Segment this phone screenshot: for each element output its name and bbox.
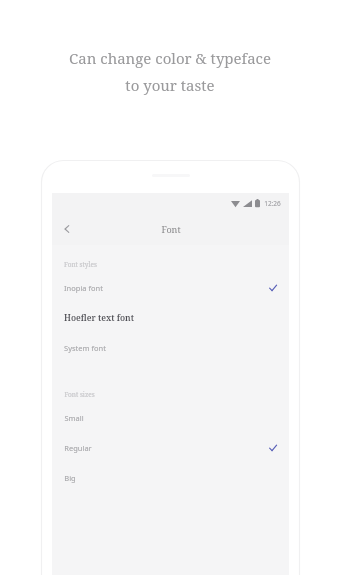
staticText: Can change color & typeface bbox=[69, 48, 271, 68]
staticText: Big bbox=[64, 473, 76, 483]
button[interactable]: Hoefler text font bbox=[52, 303, 289, 333]
staticText: Font styles bbox=[64, 260, 97, 269]
button[interactable]: Small bbox=[52, 403, 289, 433]
button[interactable]: Big bbox=[52, 463, 289, 493]
staticText: Small bbox=[64, 413, 84, 423]
staticText: 12:26 bbox=[264, 199, 281, 208]
staticText: Inopia font bbox=[64, 283, 103, 293]
staticText: to your taste bbox=[125, 75, 215, 95]
button[interactable]: Inopia font bbox=[52, 273, 289, 303]
button[interactable]: System font bbox=[52, 333, 289, 363]
button[interactable]: Back bbox=[52, 214, 82, 244]
staticText: Font bbox=[161, 223, 181, 235]
button[interactable]: Regular bbox=[52, 433, 289, 463]
staticText: Font sizes bbox=[64, 390, 95, 399]
staticText: Hoefler text font bbox=[64, 312, 134, 324]
staticText: Regular bbox=[64, 443, 92, 453]
staticText: System font bbox=[64, 343, 106, 353]
